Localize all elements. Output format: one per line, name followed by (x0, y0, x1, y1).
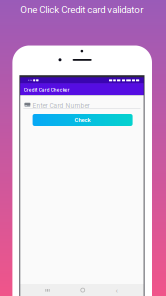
staticText: Enter Card Number (32, 102, 89, 110)
staticText: Check (75, 117, 91, 123)
button[interactable]: Check (33, 114, 133, 126)
staticText: 8:26 (28, 79, 32, 81)
staticText: Credit Card Checker (24, 87, 70, 93)
staticText: ‹ (115, 286, 117, 295)
staticText: One Click Credit card validator (20, 4, 143, 15)
